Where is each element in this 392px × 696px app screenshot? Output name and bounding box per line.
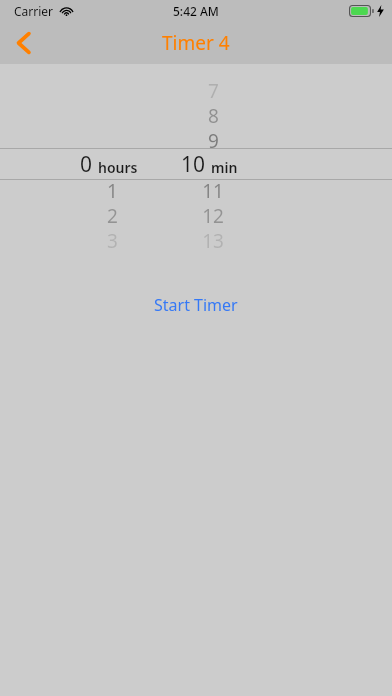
button[interactable]: 11 [0,178,392,200]
button[interactable]: 2 [0,203,392,225]
button[interactable]: 12 [0,203,392,225]
button[interactable]: Start Timer [136,288,256,322]
staticText: Timer 4 [162,30,230,56]
button[interactable]: 0 [0,149,392,179]
button[interactable]: 8 [0,103,392,125]
staticText: 7 [208,78,219,100]
staticText: 2 [107,203,118,225]
staticText: Carrier [14,3,54,19]
button[interactable]: 1 [0,178,392,200]
staticText: 11 [202,178,224,200]
staticText: 8 [208,103,219,125]
staticText: 10 [181,150,206,179]
button[interactable]: Back [0,22,46,64]
staticText: 9 [208,128,219,150]
staticText: Start Timer [154,294,238,316]
staticText: min [211,158,238,177]
button[interactable]: 10 [0,149,392,179]
staticText: 13 [202,228,224,250]
staticText: 12 [202,203,224,225]
button[interactable]: 9 [0,128,392,150]
staticText: 0 [80,150,93,179]
staticText: 3 [107,228,118,250]
staticText: 5:42 AM [173,3,219,19]
staticText: 1 [107,178,118,200]
staticText: hours [98,158,138,177]
